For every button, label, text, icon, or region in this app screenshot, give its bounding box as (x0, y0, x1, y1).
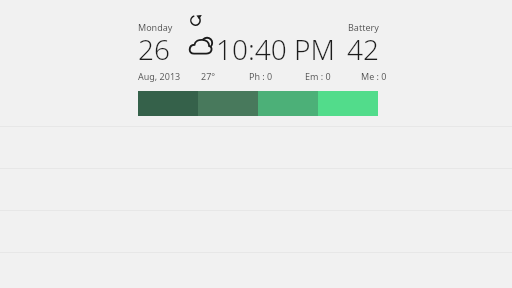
staticText: Me : 0 (361, 70, 387, 82)
staticText: Monday (138, 21, 173, 33)
staticText: 42 (347, 30, 379, 68)
button[interactable]: Refresh (188, 13, 203, 28)
button[interactable]: Weather (188, 36, 215, 58)
staticText: Em : 0 (305, 70, 331, 82)
staticText: Ph : 0 (249, 70, 273, 82)
button[interactable]: 10:40 PM (216, 30, 335, 68)
staticText: 27° (201, 70, 216, 82)
staticText: 26 (138, 30, 170, 68)
staticText: Aug, 2013 (138, 70, 181, 82)
staticText: Battery (348, 21, 379, 33)
